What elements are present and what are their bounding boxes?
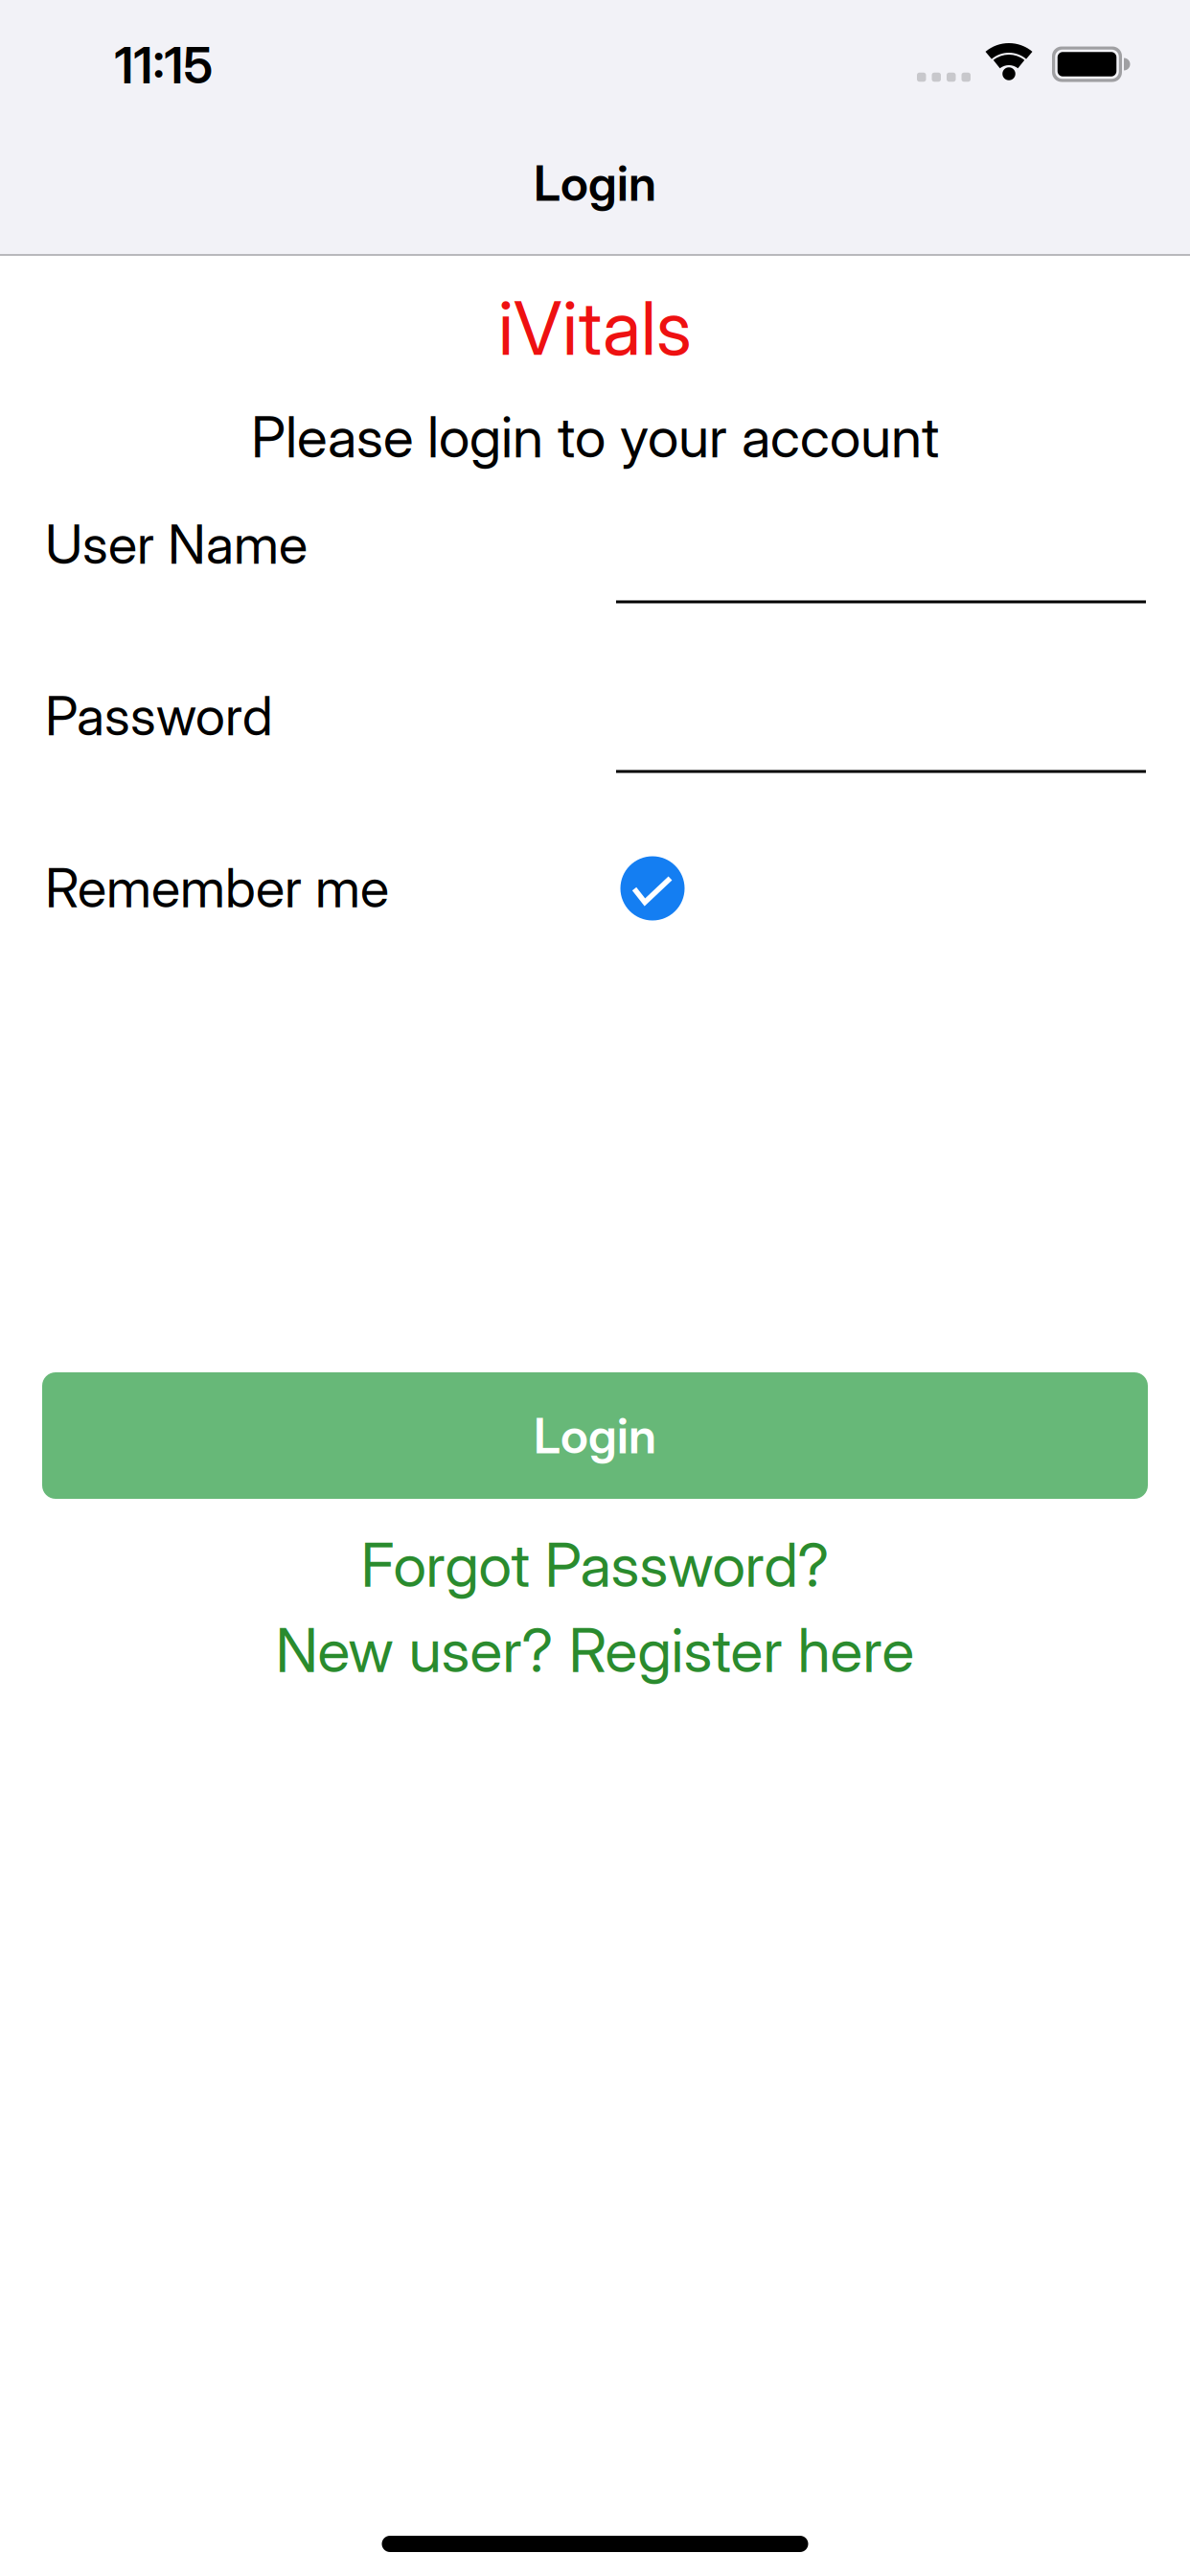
staticText: User Name [45,512,308,577]
button[interactable]: Remember me [620,856,685,920]
staticText: Login [534,1406,656,1465]
staticText: Please login to your account [251,403,939,471]
button[interactable]: Forgot Password? [361,1529,829,1601]
staticText: iVitals [498,283,692,373]
button[interactable]: User Name [616,545,1146,603]
button[interactable]: New user? Register here [275,1614,915,1687]
staticText: New user? Register here [275,1614,915,1687]
staticText: Forgot Password? [361,1529,829,1601]
button[interactable]: Password [616,714,1146,773]
staticText: 11:15 [114,35,213,95]
staticText: Remember me [45,855,389,920]
staticText: Password [45,683,273,748]
staticText: Login [534,154,656,212]
button[interactable]: Login [42,1372,1148,1499]
